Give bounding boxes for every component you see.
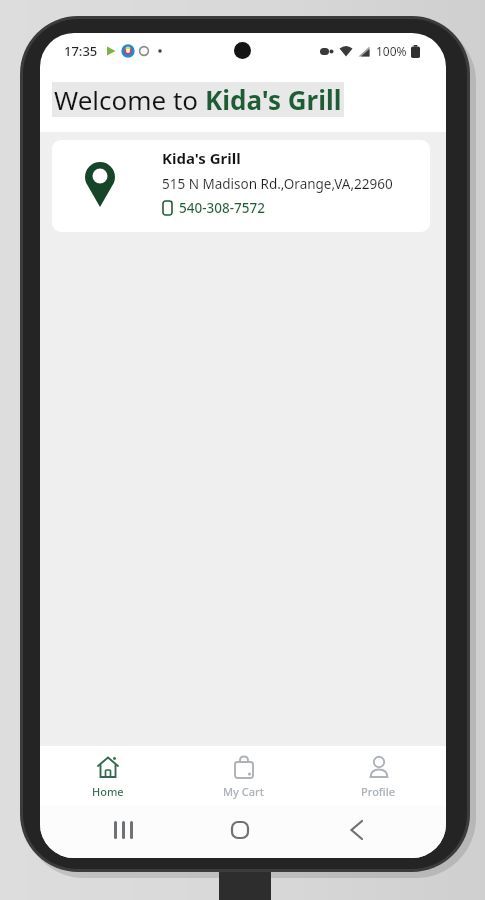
staticText: My Cart: [223, 784, 264, 799]
button[interactable]: Home: [40, 746, 176, 806]
staticText: Home: [92, 784, 124, 799]
staticText: Profile: [361, 784, 396, 799]
button[interactable]: [350, 821, 362, 839]
button[interactable]: [114, 821, 134, 839]
staticText: Welcome to: [54, 82, 205, 117]
button[interactable]: 540-308-7572: [162, 199, 265, 217]
staticText: 515 N Madison Rd.,Orange,VA,22960: [162, 175, 393, 193]
button[interactable]: My Cart: [176, 746, 311, 806]
staticText: 540-308-7572: [179, 199, 265, 217]
button[interactable]: [231, 821, 249, 839]
button[interactable]: Profile: [311, 746, 446, 806]
staticText: 17:35: [64, 42, 98, 60]
staticText: 100%: [376, 43, 407, 59]
staticText: Kida's Grill: [162, 148, 241, 168]
staticText: Kida's Grill: [205, 82, 342, 117]
button[interactable]: Kida's Grill: [52, 140, 430, 232]
